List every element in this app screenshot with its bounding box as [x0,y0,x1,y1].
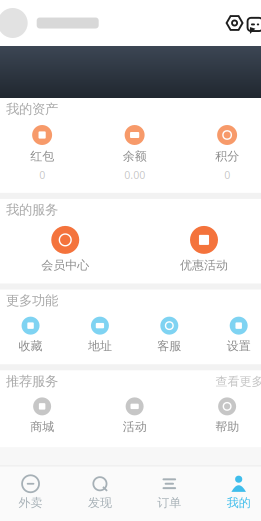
button[interactable]: 地址 [65,312,135,358]
staticText: 地址 [88,339,112,353]
button[interactable]: 优惠活动 [135,221,261,278]
button[interactable]: 红包 [0,120,88,187]
staticText: 我的 [227,495,251,510]
button[interactable]: 会员中心 [0,221,135,278]
staticText: 查看更多 [215,374,261,389]
staticText: 我的资产 [6,101,58,117]
button[interactable]: 外卖 [0,470,65,515]
button[interactable]: 收藏 [0,312,65,358]
staticText: 会员中心 [41,258,89,273]
button[interactable]: 设置 [204,312,261,358]
button[interactable]: Messages [248,0,261,46]
button[interactable]: 活动 [88,392,181,439]
button[interactable]: 我的 [204,470,261,515]
staticText: 0 [39,168,45,182]
staticText: 余额 [123,149,147,164]
button[interactable]: 客服 [135,312,204,358]
button[interactable]: 查看更多 [215,374,261,389]
staticText: 更多功能 [6,292,58,309]
staticText: 设置 [227,339,251,353]
button[interactable]: 发现 [65,470,135,515]
button[interactable]: 帮助 [181,392,261,439]
staticText: 积分 [215,149,239,164]
staticText: 我的服务 [6,202,58,218]
button[interactable]: 商城 [0,392,88,439]
staticText: 帮助 [215,419,239,434]
staticText: 订单 [157,495,181,510]
button[interactable]: 余额 [88,120,181,187]
staticText: 0 [224,168,230,182]
button[interactable] [0,0,108,46]
button[interactable]: Settings [222,0,248,46]
staticText: 优惠活动 [180,258,228,273]
staticText: 红包 [30,149,54,164]
staticText: 0.00 [124,168,145,182]
button[interactable]: 积分 [181,120,261,187]
staticText: 客服 [157,339,181,353]
staticText: 收藏 [19,339,43,353]
staticText: 推荐服务 [6,373,58,390]
button[interactable]: 订单 [135,470,204,515]
staticText: 发现 [88,495,112,510]
staticText: 外卖 [19,495,43,510]
staticText: 活动 [123,419,147,434]
staticText: 商城 [30,419,54,434]
